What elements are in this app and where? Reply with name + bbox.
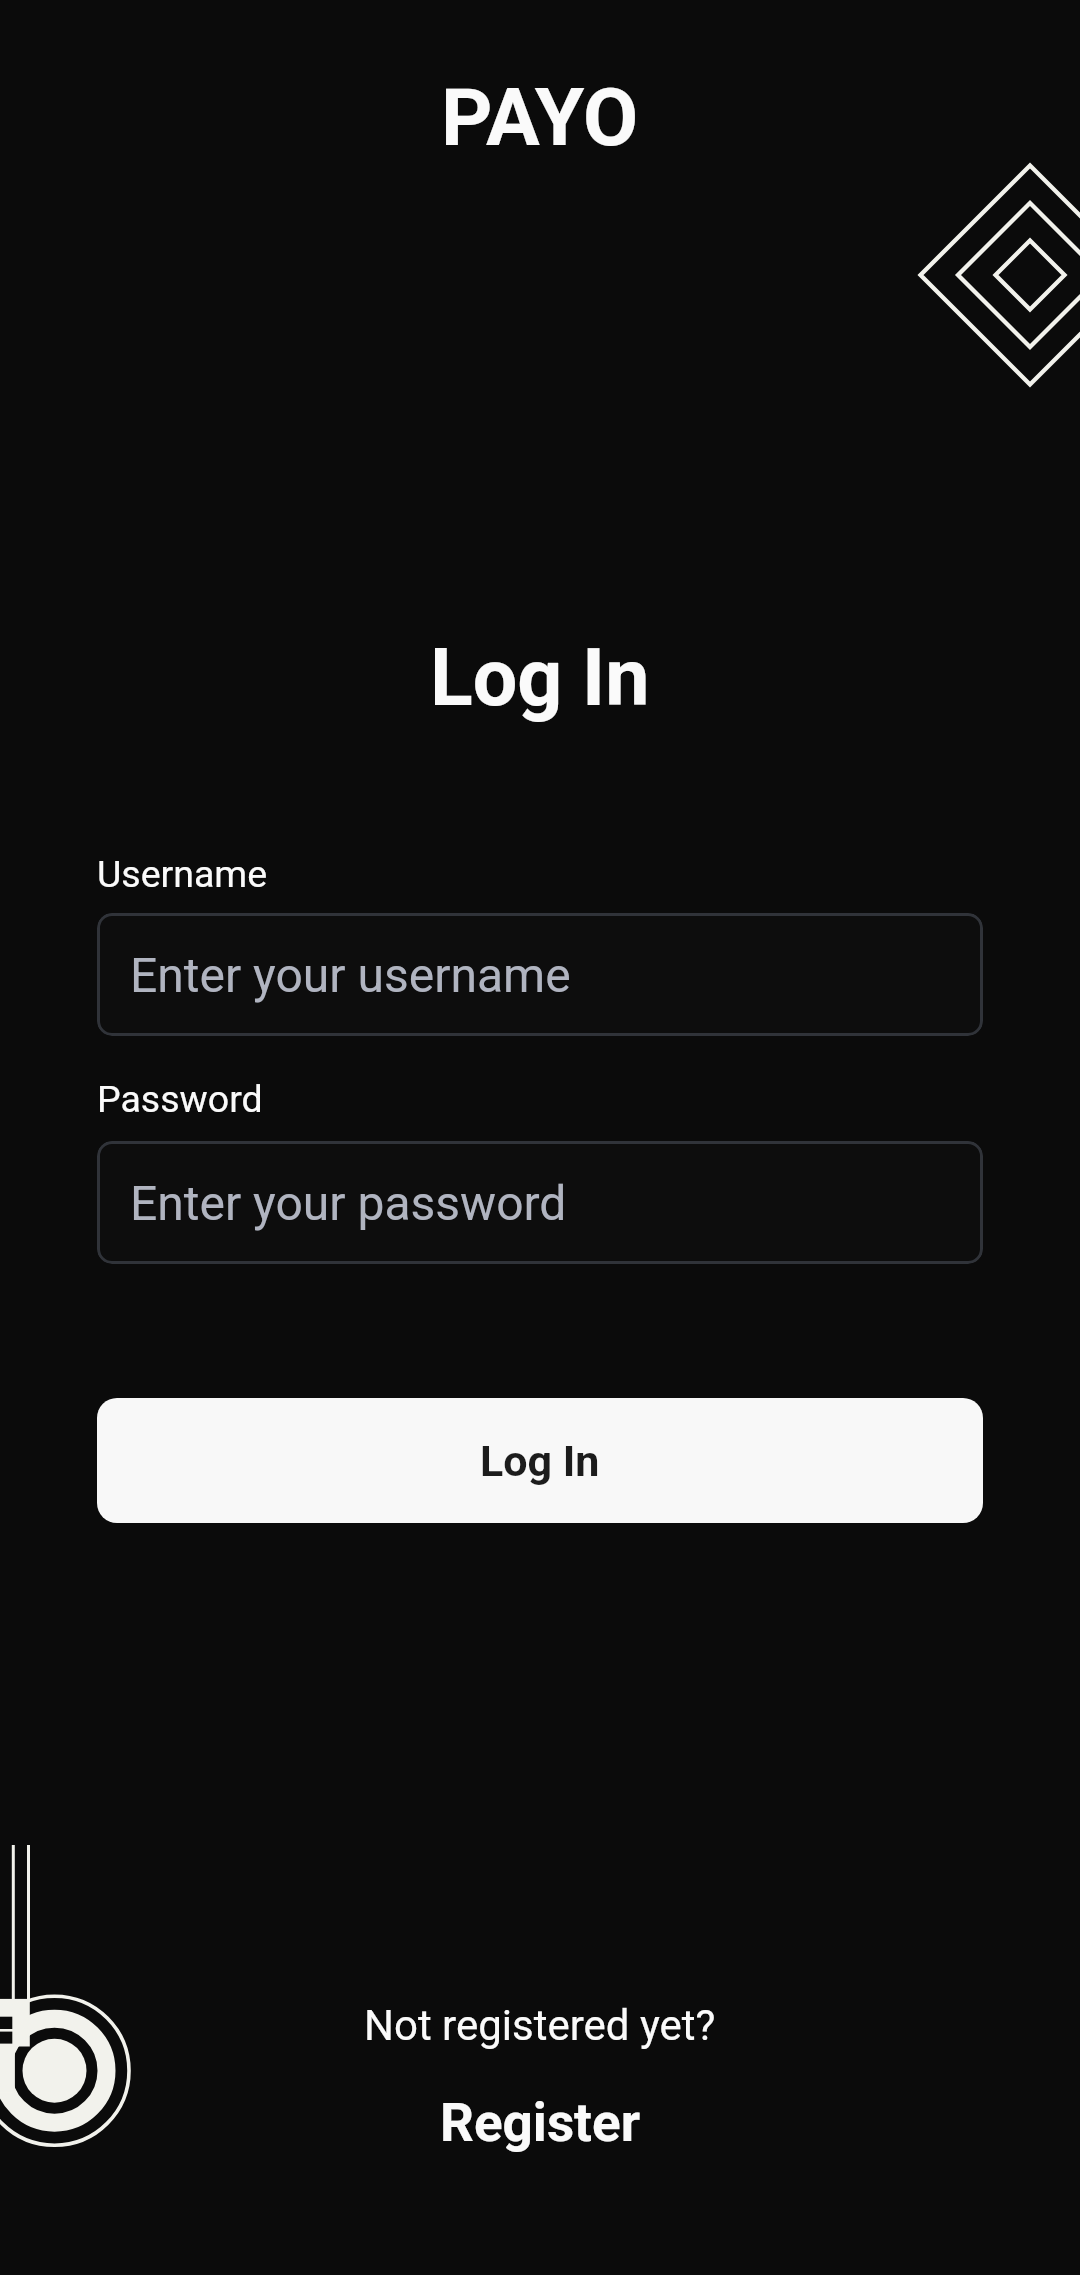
staticText: Log In: [430, 632, 650, 725]
staticText: Not registered yet?: [364, 2001, 716, 2050]
staticText: Log In: [480, 1436, 600, 1486]
staticText: Enter your username: [130, 947, 571, 1003]
button[interactable]: Enter your password: [97, 1141, 983, 1264]
button[interactable]: Register: [416, 2084, 665, 2162]
staticText: Enter your password: [130, 1175, 567, 1231]
button[interactable]: Log In: [97, 1398, 983, 1523]
button[interactable]: Enter your username: [97, 913, 983, 1036]
staticText: PAYO: [441, 71, 639, 165]
staticText: Username: [97, 852, 268, 896]
staticText: Register: [440, 2092, 641, 2154]
staticText: Password: [97, 1077, 263, 1121]
